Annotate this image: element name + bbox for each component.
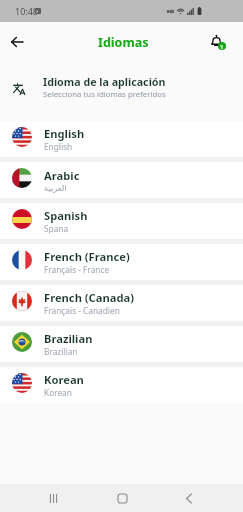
staticText: 1 [220,43,224,50]
staticText: Idiomas [98,34,149,51]
staticText: Korean [44,372,84,387]
button[interactable]: French (Canada) [0,285,243,321]
button[interactable]: English [0,121,243,157]
staticText: Spana [44,223,69,234]
staticText: French (France) [44,249,130,264]
button[interactable]: Home [105,484,139,512]
staticText: Korean [44,387,72,398]
button[interactable]: Korean [0,367,243,403]
staticText: Spanish [44,208,88,223]
button[interactable]: Spanish [0,203,243,239]
staticText: English [44,141,73,152]
staticText: Selecciona tus idiomas preferidos [43,89,166,100]
staticText: French (Canada) [44,290,135,305]
staticText: العربية [44,183,67,193]
staticText: Idioma de la aplicación [43,75,166,90]
button[interactable]: French (France) [0,244,243,280]
staticText: Brazilian [44,346,78,357]
button[interactable]: Recent apps [36,484,70,512]
button[interactable]: Back [172,484,206,512]
button[interactable]: Back [5,30,29,54]
button[interactable]: Notifications [209,33,227,51]
staticText: Arabic [44,168,80,183]
button[interactable]: Arabic [0,162,243,198]
staticText: English [44,126,85,141]
staticText: Français - France [44,264,110,275]
staticText: Brazilian [44,331,93,346]
staticText: 10:48 [15,5,39,17]
staticText: Français - Canadien [44,305,120,316]
button[interactable]: Brazilian [0,326,243,362]
